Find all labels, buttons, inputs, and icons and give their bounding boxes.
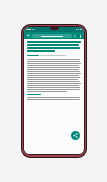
button[interactable]: Refresh bbox=[73, 34, 77, 38]
button[interactable]: More options bbox=[78, 34, 82, 38]
button[interactable]: Share bbox=[71, 131, 80, 140]
button[interactable]: Back bbox=[26, 33, 31, 38]
button[interactable] bbox=[32, 34, 72, 38]
